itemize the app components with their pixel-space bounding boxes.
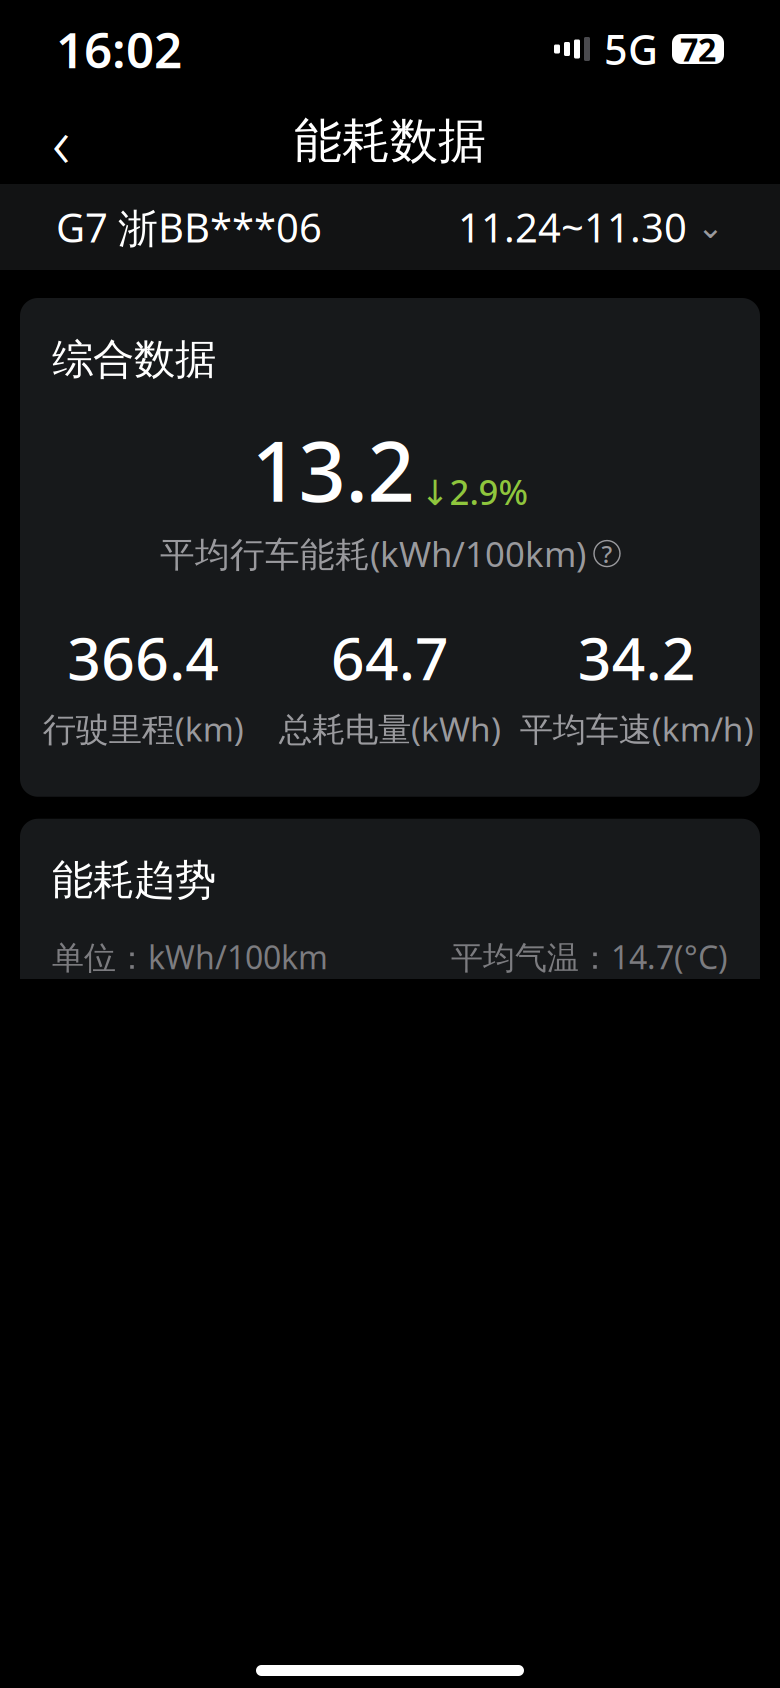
staticText: 平均车速(km/h) xyxy=(520,706,754,751)
staticText: 综合数据 xyxy=(52,334,216,385)
staticText: 16:02 xyxy=(56,16,182,82)
staticText: 行驶里程(km) xyxy=(43,706,244,751)
staticText: 平均气温：14.7(°C) xyxy=(451,935,728,978)
staticText: 能耗趋势 xyxy=(52,855,216,906)
staticText: 单位：kWh/100km xyxy=(52,935,328,978)
staticText: 72 xyxy=(680,28,716,70)
staticText: 366.4 xyxy=(67,619,219,696)
staticText: ‹ xyxy=(52,95,70,187)
staticText: 34.2 xyxy=(578,619,696,696)
staticText: 能耗数据 xyxy=(294,111,486,170)
staticText: ⌄ xyxy=(697,209,724,245)
button[interactable]: 说明 xyxy=(594,541,620,567)
staticText: 11.24~11.30 xyxy=(458,200,687,253)
staticText: 平均行车能耗(kWh/100km) xyxy=(160,530,586,576)
button[interactable]: 11.24~11.30 xyxy=(458,200,724,253)
staticText: 总耗电量(kWh) xyxy=(279,706,501,751)
staticText: G7 浙BB***06 xyxy=(56,200,322,254)
staticText: 5G xyxy=(604,22,658,76)
button[interactable]: 返回 xyxy=(26,106,96,176)
staticText: ↓2.9% xyxy=(420,468,528,514)
staticText: 64.7 xyxy=(331,619,449,696)
staticText: 13.2 xyxy=(251,415,414,525)
staticText: ? xyxy=(601,538,612,569)
